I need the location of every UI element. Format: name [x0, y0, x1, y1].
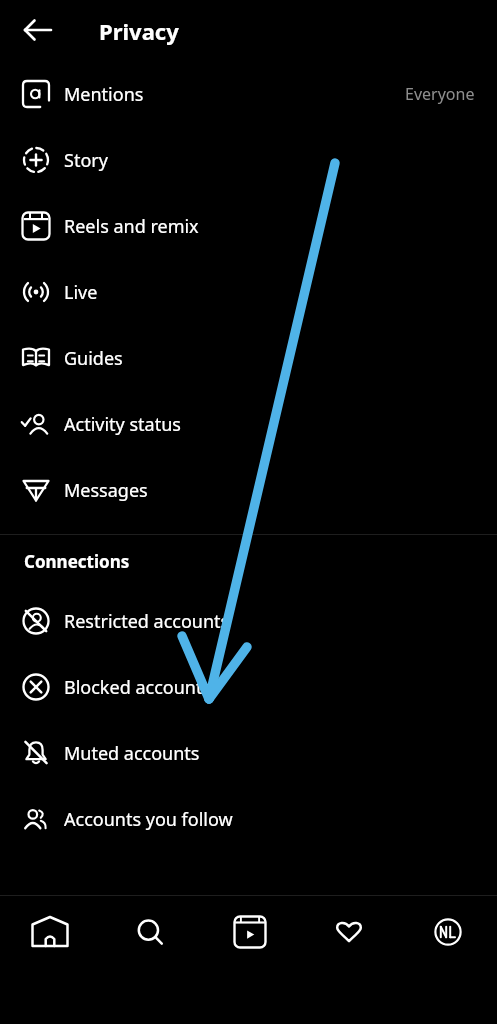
- staticText: Accounts you follow: [64, 807, 233, 832]
- button[interactable]: Mentions: [0, 61, 497, 127]
- button[interactable]: Activity: [299, 896, 398, 1024]
- button[interactable]: Home: [0, 896, 100, 1024]
- button[interactable]: Back: [14, 6, 62, 54]
- button[interactable]: Messages: [0, 457, 497, 523]
- button[interactable]: Search: [100, 896, 200, 1024]
- staticText: Messages: [64, 478, 148, 503]
- staticText: Restricted accounts: [64, 609, 230, 634]
- button[interactable]: Reels and remix: [0, 193, 497, 259]
- staticText: Live: [64, 280, 98, 305]
- button[interactable]: Reels: [200, 896, 299, 1024]
- staticText: Everyone: [405, 83, 475, 105]
- staticText: Story: [64, 148, 108, 173]
- button[interactable]: Profile: [398, 896, 497, 1024]
- button[interactable]: Muted accounts: [0, 720, 497, 786]
- staticText: Guides: [64, 346, 123, 371]
- button[interactable]: Story: [0, 127, 497, 193]
- button[interactable]: Guides: [0, 325, 497, 391]
- staticText: Privacy: [99, 16, 179, 46]
- staticText: Activity status: [64, 412, 181, 437]
- staticText: Connections: [24, 550, 130, 573]
- button[interactable]: Restricted accounts: [0, 588, 497, 654]
- staticText: Reels and remix: [64, 214, 199, 239]
- button[interactable]: Activity status: [0, 391, 497, 457]
- staticText: Mentions: [64, 82, 144, 107]
- button[interactable]: Accounts you follow: [0, 786, 497, 852]
- staticText: Muted accounts: [64, 741, 200, 766]
- button[interactable]: Blocked accounts: [0, 654, 497, 720]
- button[interactable]: Live: [0, 259, 497, 325]
- staticText: Blocked accounts: [64, 675, 212, 700]
